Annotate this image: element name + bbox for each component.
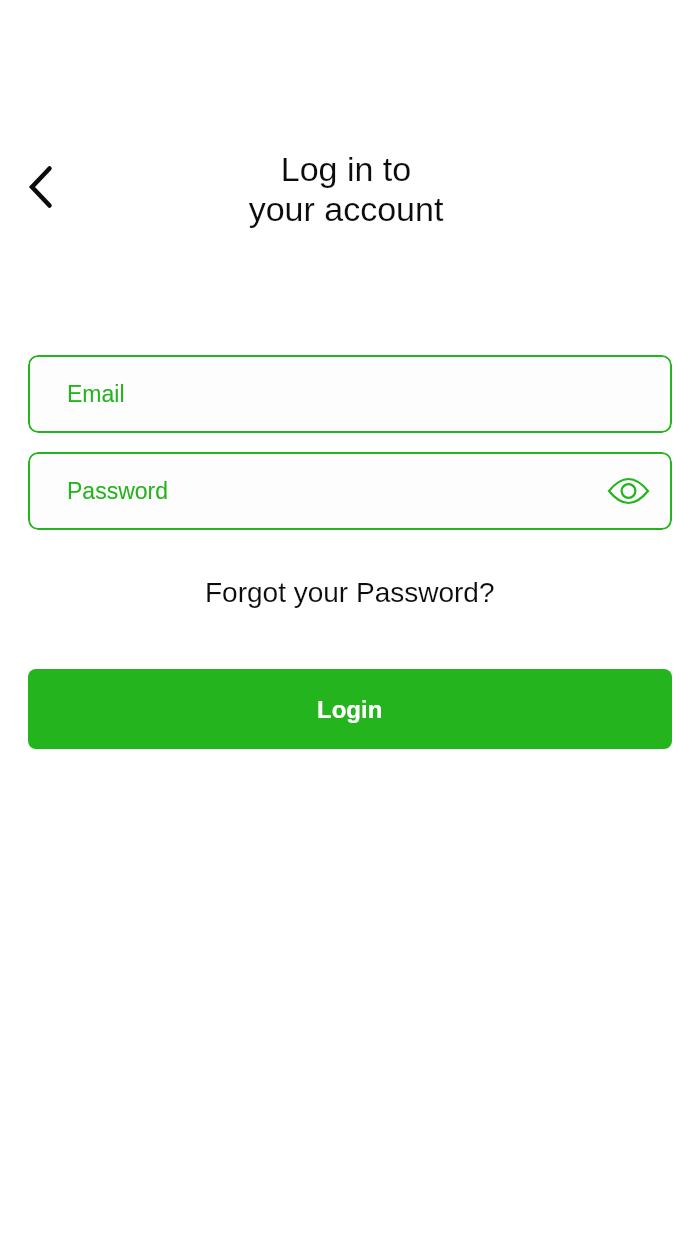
button[interactable]: Password [28, 452, 672, 530]
button[interactable] [598, 464, 658, 518]
staticText: Log in to your account [0, 150, 696, 228]
button[interactable]: Email [28, 355, 672, 433]
staticText: Login [317, 696, 383, 723]
staticText: Email [67, 381, 125, 407]
staticText: Password [67, 478, 168, 504]
button[interactable] [14, 157, 66, 217]
button[interactable]: Forgot your Password? [205, 577, 495, 608]
button[interactable]: Login [28, 669, 672, 749]
